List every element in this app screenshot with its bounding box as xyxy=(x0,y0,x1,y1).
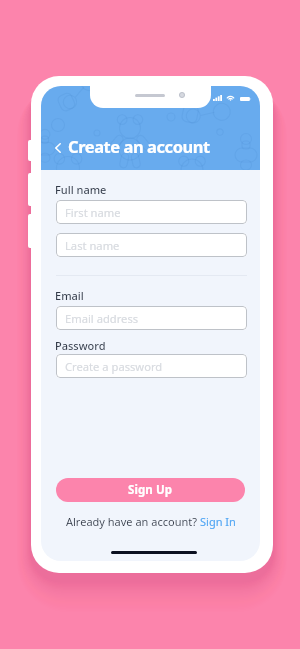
staticText: Sign Up xyxy=(128,482,173,498)
staticText: Already have an account? xyxy=(66,514,200,529)
staticText: Create a password xyxy=(65,359,163,374)
button[interactable]: Last name xyxy=(56,233,247,257)
staticText: Sign In xyxy=(200,514,236,529)
staticText: Full name xyxy=(55,182,107,197)
staticText: Email address xyxy=(65,311,139,326)
button[interactable]: Sign Up xyxy=(56,478,245,502)
staticText: First name xyxy=(65,205,121,220)
button[interactable]: Create a password xyxy=(56,354,247,378)
staticText: Last name xyxy=(65,238,120,253)
button: Create an account xyxy=(68,135,210,157)
staticText: Email xyxy=(55,288,84,303)
button[interactable]: Email address xyxy=(56,306,247,330)
button[interactable]: Sign In xyxy=(200,514,236,529)
staticText: Password xyxy=(55,338,106,353)
button[interactable]: First name xyxy=(56,200,247,224)
button[interactable]: Back xyxy=(49,136,67,160)
